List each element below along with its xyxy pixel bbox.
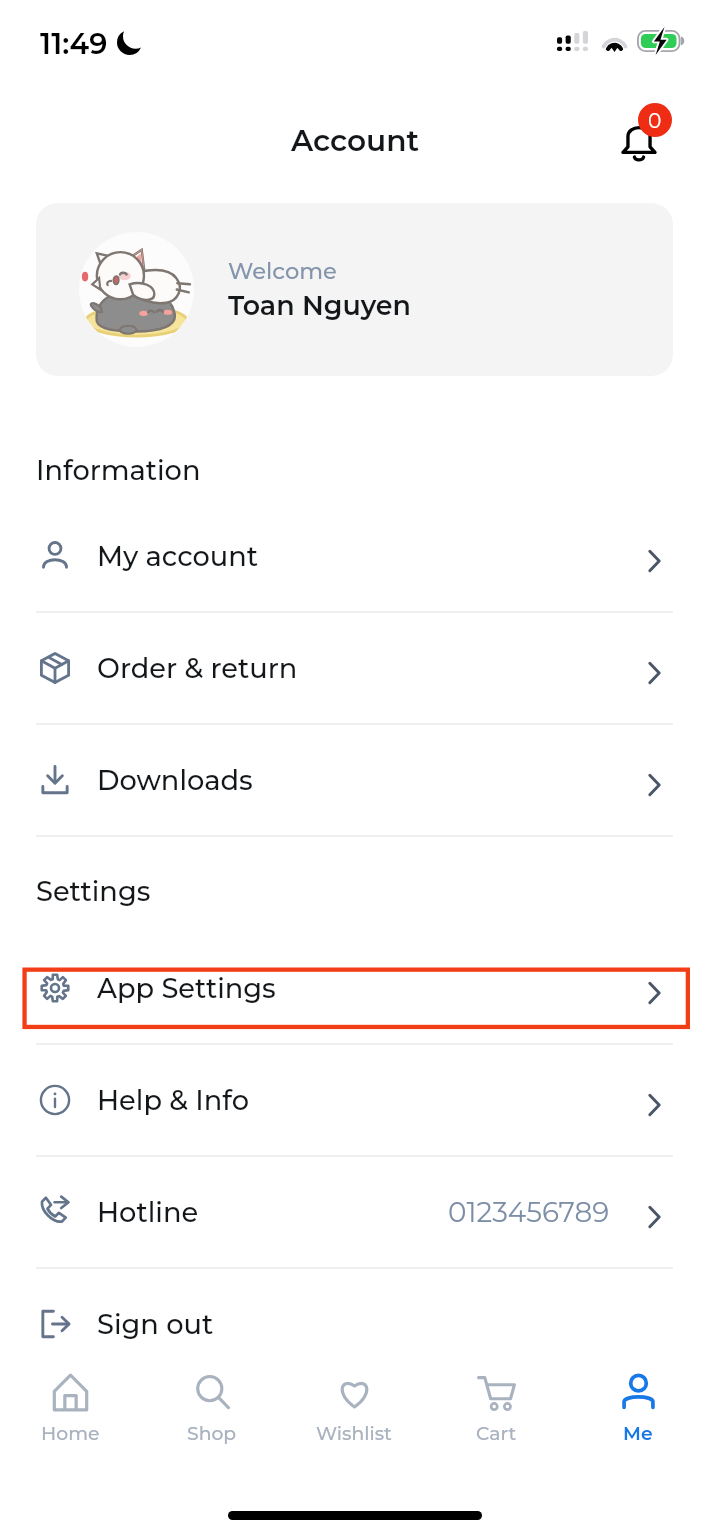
staticText: Me — [623, 1422, 653, 1445]
staticText: Wishlist — [316, 1422, 392, 1445]
button[interactable]: Home — [0, 1348, 141, 1453]
staticText: Order & return — [97, 652, 298, 685]
button[interactable]: Wishlist — [283, 1348, 425, 1453]
staticText: Hotline — [97, 1196, 199, 1229]
staticText: App Settings — [97, 972, 276, 1005]
staticText: 0 — [648, 108, 662, 133]
button[interactable]: My account — [0, 501, 709, 611]
staticText: My account — [97, 540, 259, 573]
button[interactable]: Hotline — [0, 1157, 709, 1267]
button[interactable]: Shop — [141, 1348, 283, 1453]
staticText: Toan Nguyen — [228, 289, 411, 322]
button[interactable]: Downloads — [0, 725, 709, 835]
staticText: Account — [291, 122, 419, 158]
button[interactable]: Welcome — [36, 203, 673, 376]
staticText: Downloads — [97, 764, 253, 797]
button[interactable]: Order & return — [0, 613, 709, 723]
staticText: Help & Info — [97, 1084, 249, 1117]
staticText: 0123456789 — [448, 1195, 610, 1229]
staticText: Shop — [187, 1422, 237, 1445]
staticText: Cart — [476, 1422, 517, 1445]
staticText: Home — [41, 1422, 100, 1445]
staticText: Settings — [36, 875, 151, 908]
staticText: Welcome — [228, 257, 337, 284]
button[interactable]: Cart — [425, 1348, 567, 1453]
staticText: Information — [36, 454, 201, 487]
button[interactable]: Notifications — [618, 103, 672, 157]
staticText: Sign out — [97, 1308, 214, 1341]
staticText: 11:49 — [40, 26, 108, 61]
button[interactable]: Help & Info — [0, 1045, 709, 1155]
button[interactable]: Me — [567, 1348, 709, 1453]
button[interactable]: App Settings — [0, 933, 709, 1043]
button[interactable]: Sign out — [0, 1269, 709, 1379]
